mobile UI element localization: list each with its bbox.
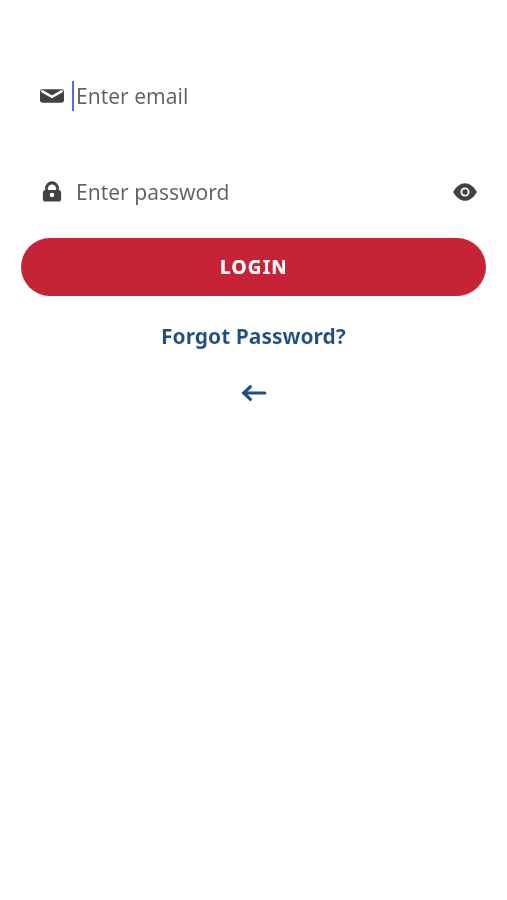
button[interactable]: Back [232,371,276,415]
button[interactable]: LOGIN [21,238,486,296]
button[interactable]: Enter password [0,168,507,216]
button[interactable]: Enter email [0,72,507,120]
staticText: Forgot Password? [161,322,346,351]
staticText: Enter email [76,82,189,111]
staticText: Enter password [76,178,230,207]
staticText: LOGIN [220,254,288,280]
button[interactable]: Forgot Password? [149,318,358,355]
button[interactable]: Show password [447,174,483,210]
